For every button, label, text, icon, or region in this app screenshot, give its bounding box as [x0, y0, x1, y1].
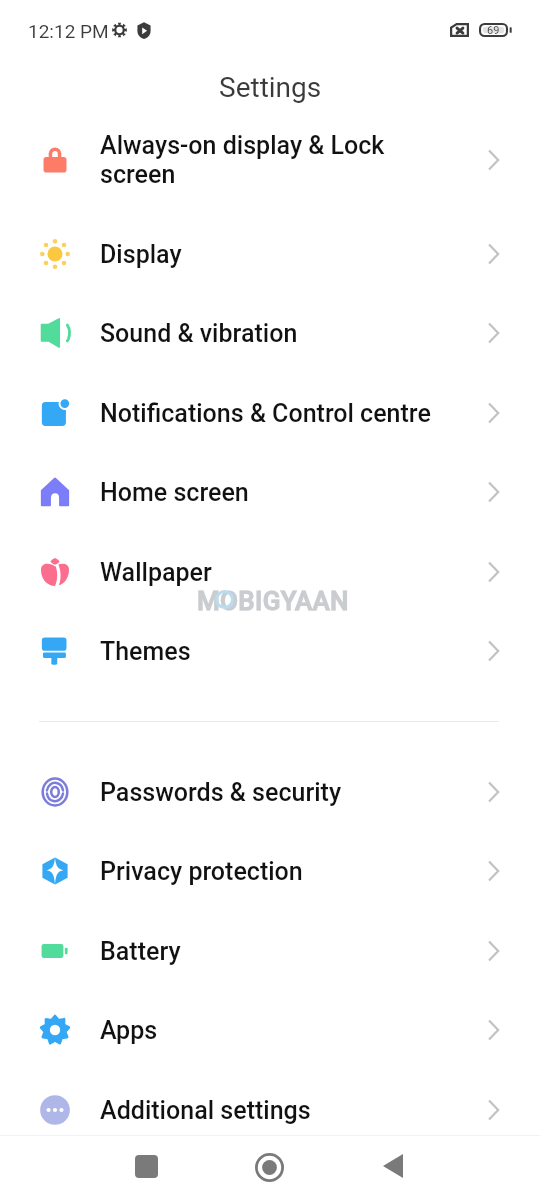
button[interactable]: Passwords & security [0, 752, 540, 832]
staticText: Passwords & security [100, 778, 488, 807]
button[interactable]: Themes [0, 611, 540, 691]
staticText: Wallpaper [100, 558, 488, 587]
button[interactable]: Display [0, 214, 540, 294]
staticText: Always-on display & Lock screen [100, 131, 488, 189]
button[interactable]: Home screen [0, 452, 540, 532]
staticText: Privacy protection [100, 857, 488, 886]
button[interactable]: Recents [135, 1155, 158, 1178]
staticText: Home screen [100, 478, 488, 507]
button[interactable]: Back [383, 1154, 403, 1178]
button[interactable]: Always-on display & Lock screen [0, 106, 540, 214]
staticText: Battery [100, 937, 488, 966]
button[interactable]: Additional settings [0, 1070, 540, 1150]
staticText: Apps [100, 1016, 488, 1045]
staticText: Display [100, 240, 488, 269]
button[interactable]: Privacy protection [0, 831, 540, 911]
button[interactable]: Sound & vibration [0, 293, 540, 373]
button[interactable]: Apps [0, 990, 540, 1070]
button[interactable]: Notifications & Control centre [0, 373, 540, 453]
button[interactable]: Battery [0, 911, 540, 991]
staticText: Settings [219, 71, 322, 104]
staticText: 69 [487, 24, 500, 37]
staticText: Sound & vibration [100, 319, 488, 348]
staticText: Themes [100, 637, 488, 666]
staticText: Additional settings [100, 1096, 488, 1125]
staticText: 12:12 PM [28, 20, 109, 42]
button[interactable]: Wallpaper [0, 532, 540, 612]
staticText: Notifications & Control centre [100, 399, 488, 428]
button[interactable]: Home [255, 1153, 284, 1182]
staticText: MOBIGYAAN [197, 586, 349, 616]
